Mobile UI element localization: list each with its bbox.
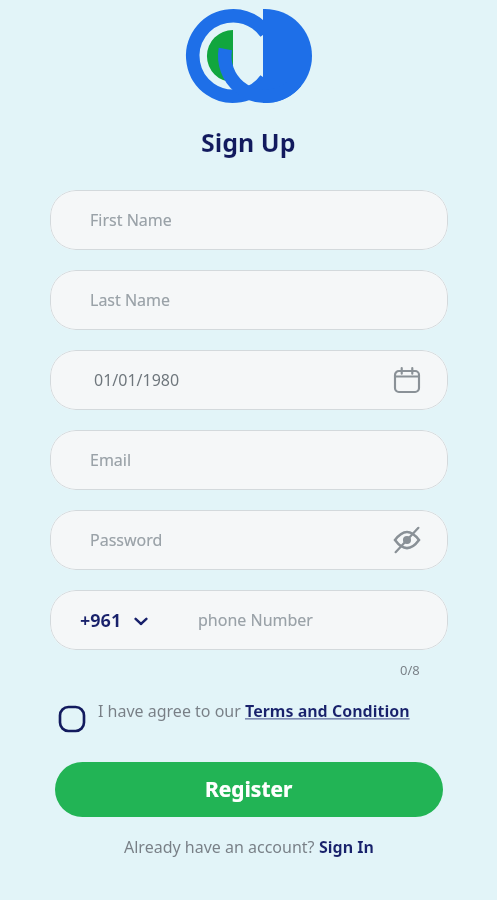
staticText: I have agree to our Terms and Condition xyxy=(98,700,410,722)
button[interactable]: Show password xyxy=(392,525,422,555)
staticText: Password xyxy=(90,529,163,551)
staticText: +961 xyxy=(80,608,122,633)
staticText: First Name xyxy=(90,209,172,231)
staticText: Sign Up xyxy=(201,125,296,159)
button[interactable]: Last Name xyxy=(50,270,448,330)
button[interactable]: Password xyxy=(50,510,448,570)
staticText: Already have an account? xyxy=(124,836,319,858)
button[interactable]: I have agree to our Terms and Condition xyxy=(60,700,440,731)
button[interactable]: Email xyxy=(50,430,448,490)
button[interactable]: +961 xyxy=(50,590,448,650)
staticText: phone Number xyxy=(198,609,313,631)
staticText: Email xyxy=(90,449,132,471)
button[interactable]: First Name xyxy=(50,190,448,250)
staticText: 01/01/1980 xyxy=(94,369,180,391)
button[interactable]: Register xyxy=(55,762,443,817)
staticText: 0/8 xyxy=(400,661,420,679)
button[interactable]: Already have an account? xyxy=(124,836,374,858)
staticText: Register xyxy=(205,775,293,804)
button[interactable]: 01/01/1980 xyxy=(50,350,448,410)
button[interactable]: +961 xyxy=(80,608,150,633)
staticText: Sign In xyxy=(319,836,374,858)
staticText: Last Name xyxy=(90,289,171,311)
button[interactable]: Pick date xyxy=(392,365,422,395)
